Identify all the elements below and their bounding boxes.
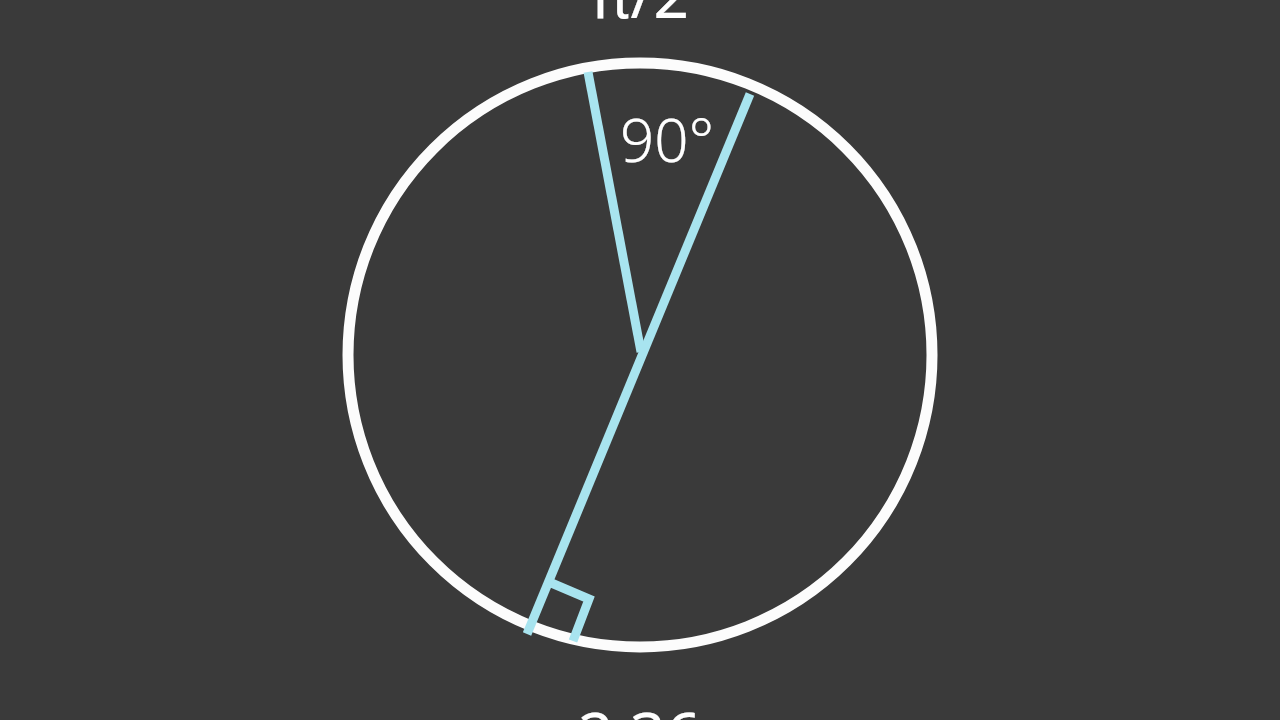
button[interactable]: Circle geometry diagram showing a 90 deg… (0, 0, 1280, 720)
